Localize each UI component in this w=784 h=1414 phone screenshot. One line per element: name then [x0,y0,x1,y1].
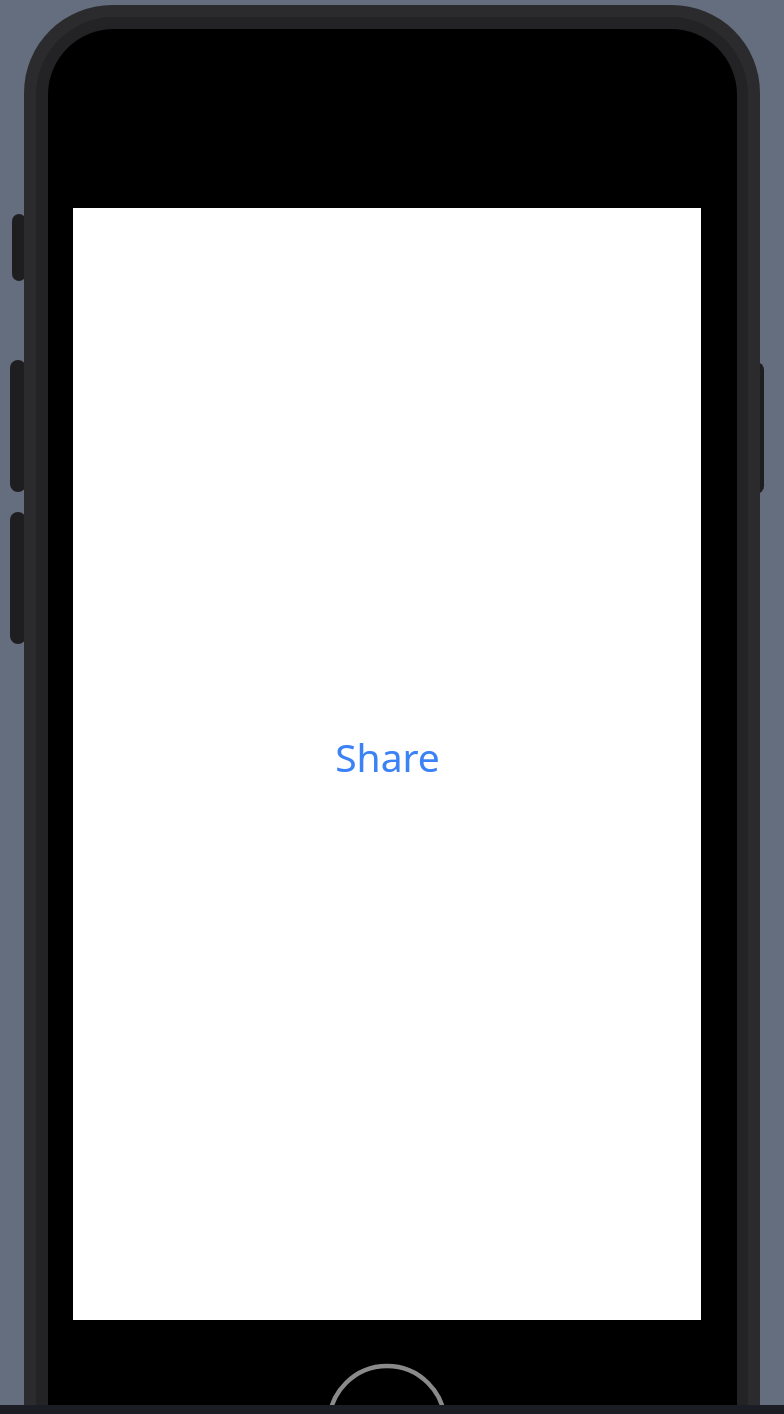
button[interactable]: Silent switch [10,214,26,281]
button[interactable]: Power [748,362,764,494]
button[interactable]: Share [335,730,440,783]
button[interactable]: Volume up [10,360,26,492]
staticText: Share [335,730,440,783]
button[interactable]: Volume down [10,512,26,644]
button[interactable]: Home [329,1366,445,1414]
